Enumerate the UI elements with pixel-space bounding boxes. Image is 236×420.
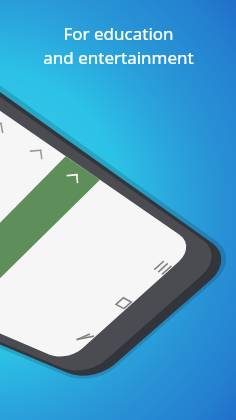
- staticText: For education and entertainment: [43, 22, 194, 69]
